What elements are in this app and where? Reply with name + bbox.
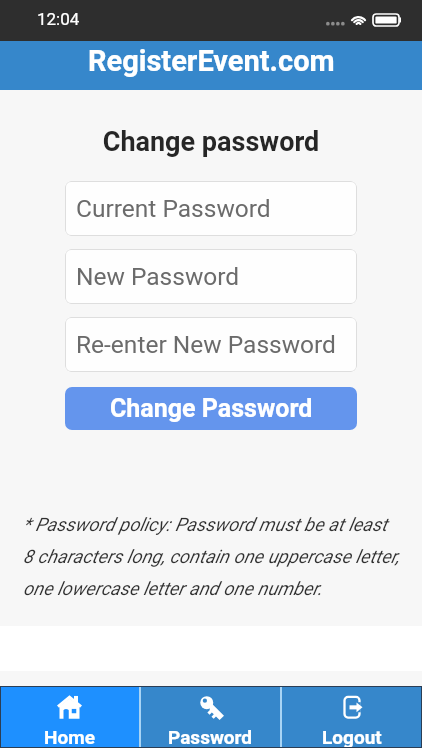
button[interactable]: Current Password <box>65 181 357 236</box>
staticText: Change Password <box>110 394 313 423</box>
button[interactable]: Logout <box>282 686 422 748</box>
staticText: Change password <box>0 126 422 158</box>
button[interactable]: Home <box>0 686 139 748</box>
staticText: Logout <box>322 726 382 748</box>
staticText: Current Password <box>76 194 271 223</box>
button[interactable]: New Password <box>65 249 357 304</box>
staticText: RegisterEvent.com <box>88 44 335 78</box>
staticText: Re-enter New Password <box>76 330 336 359</box>
staticText: 12:04 <box>37 9 80 29</box>
other: Home <box>57 695 82 719</box>
staticText: Password <box>168 726 253 748</box>
staticText: Home <box>44 726 95 748</box>
staticText: * Password policy: Password must be at l… <box>23 514 400 600</box>
button[interactable]: Change Password <box>65 387 357 430</box>
other: Password <box>198 695 223 719</box>
other: Logout <box>340 695 365 719</box>
button[interactable]: Password <box>141 686 280 748</box>
button[interactable]: Re-enter New Password <box>65 317 357 372</box>
staticText: New Password <box>76 262 240 291</box>
